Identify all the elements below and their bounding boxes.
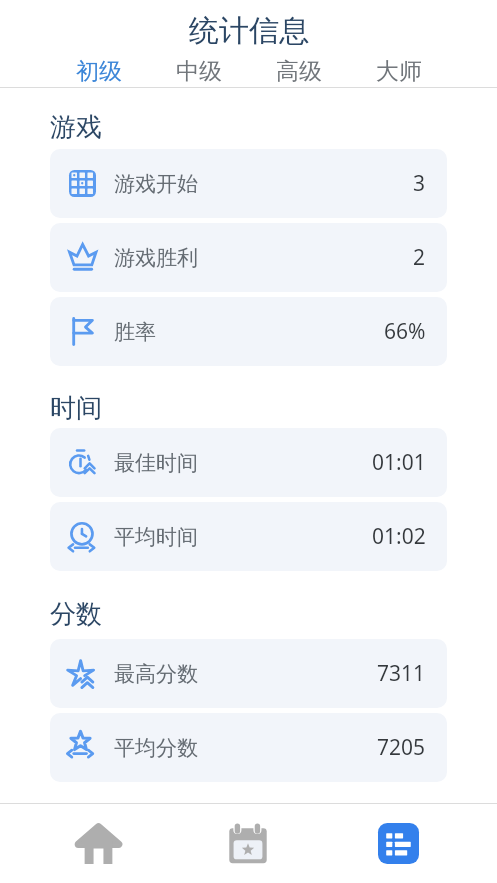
staticText: 平均时间 <box>114 524 198 550</box>
staticText: 最佳时间 <box>114 450 198 476</box>
button[interactable]: 初级 <box>48 56 149 87</box>
staticText: 大师 <box>376 57 422 86</box>
staticText: 高级 <box>276 57 322 86</box>
button[interactable]: 平均时间 <box>50 502 447 571</box>
staticText: 7311 <box>377 659 426 688</box>
staticText: 游戏胜利 <box>114 245 198 271</box>
staticText: 01:02 <box>372 522 426 551</box>
button[interactable]: 最佳时间 <box>50 428 447 497</box>
staticText: 7205 <box>377 733 426 762</box>
button[interactable]: 游戏开始 <box>50 149 447 218</box>
staticText: 时间 <box>50 392 102 425</box>
staticText: 胜率 <box>114 319 156 345</box>
staticText: 最高分数 <box>114 661 198 687</box>
staticText: 3 <box>413 169 426 198</box>
staticText: 分数 <box>50 598 102 631</box>
button[interactable]: Home <box>24 804 173 883</box>
staticText: 初级 <box>76 57 122 86</box>
staticText: 游戏开始 <box>114 171 198 197</box>
button[interactable]: 中级 <box>149 56 249 87</box>
staticText: 66% <box>384 317 426 346</box>
button[interactable]: 高级 <box>249 56 349 87</box>
staticText: 01:01 <box>372 448 426 477</box>
staticText: 2 <box>413 243 426 272</box>
button[interactable]: Daily challenge <box>173 804 323 883</box>
button[interactable]: Statistics <box>323 804 473 883</box>
button[interactable]: 最高分数 <box>50 639 447 708</box>
button[interactable]: 游戏胜利 <box>50 223 447 292</box>
staticText: 平均分数 <box>114 735 198 761</box>
button[interactable]: 胜率 <box>50 297 447 366</box>
staticText: 游戏 <box>50 111 102 144</box>
button[interactable]: 平均分数 <box>50 713 447 782</box>
staticText: 统计信息 <box>189 12 309 50</box>
button[interactable]: 大师 <box>349 56 449 87</box>
staticText: 中级 <box>176 57 222 86</box>
